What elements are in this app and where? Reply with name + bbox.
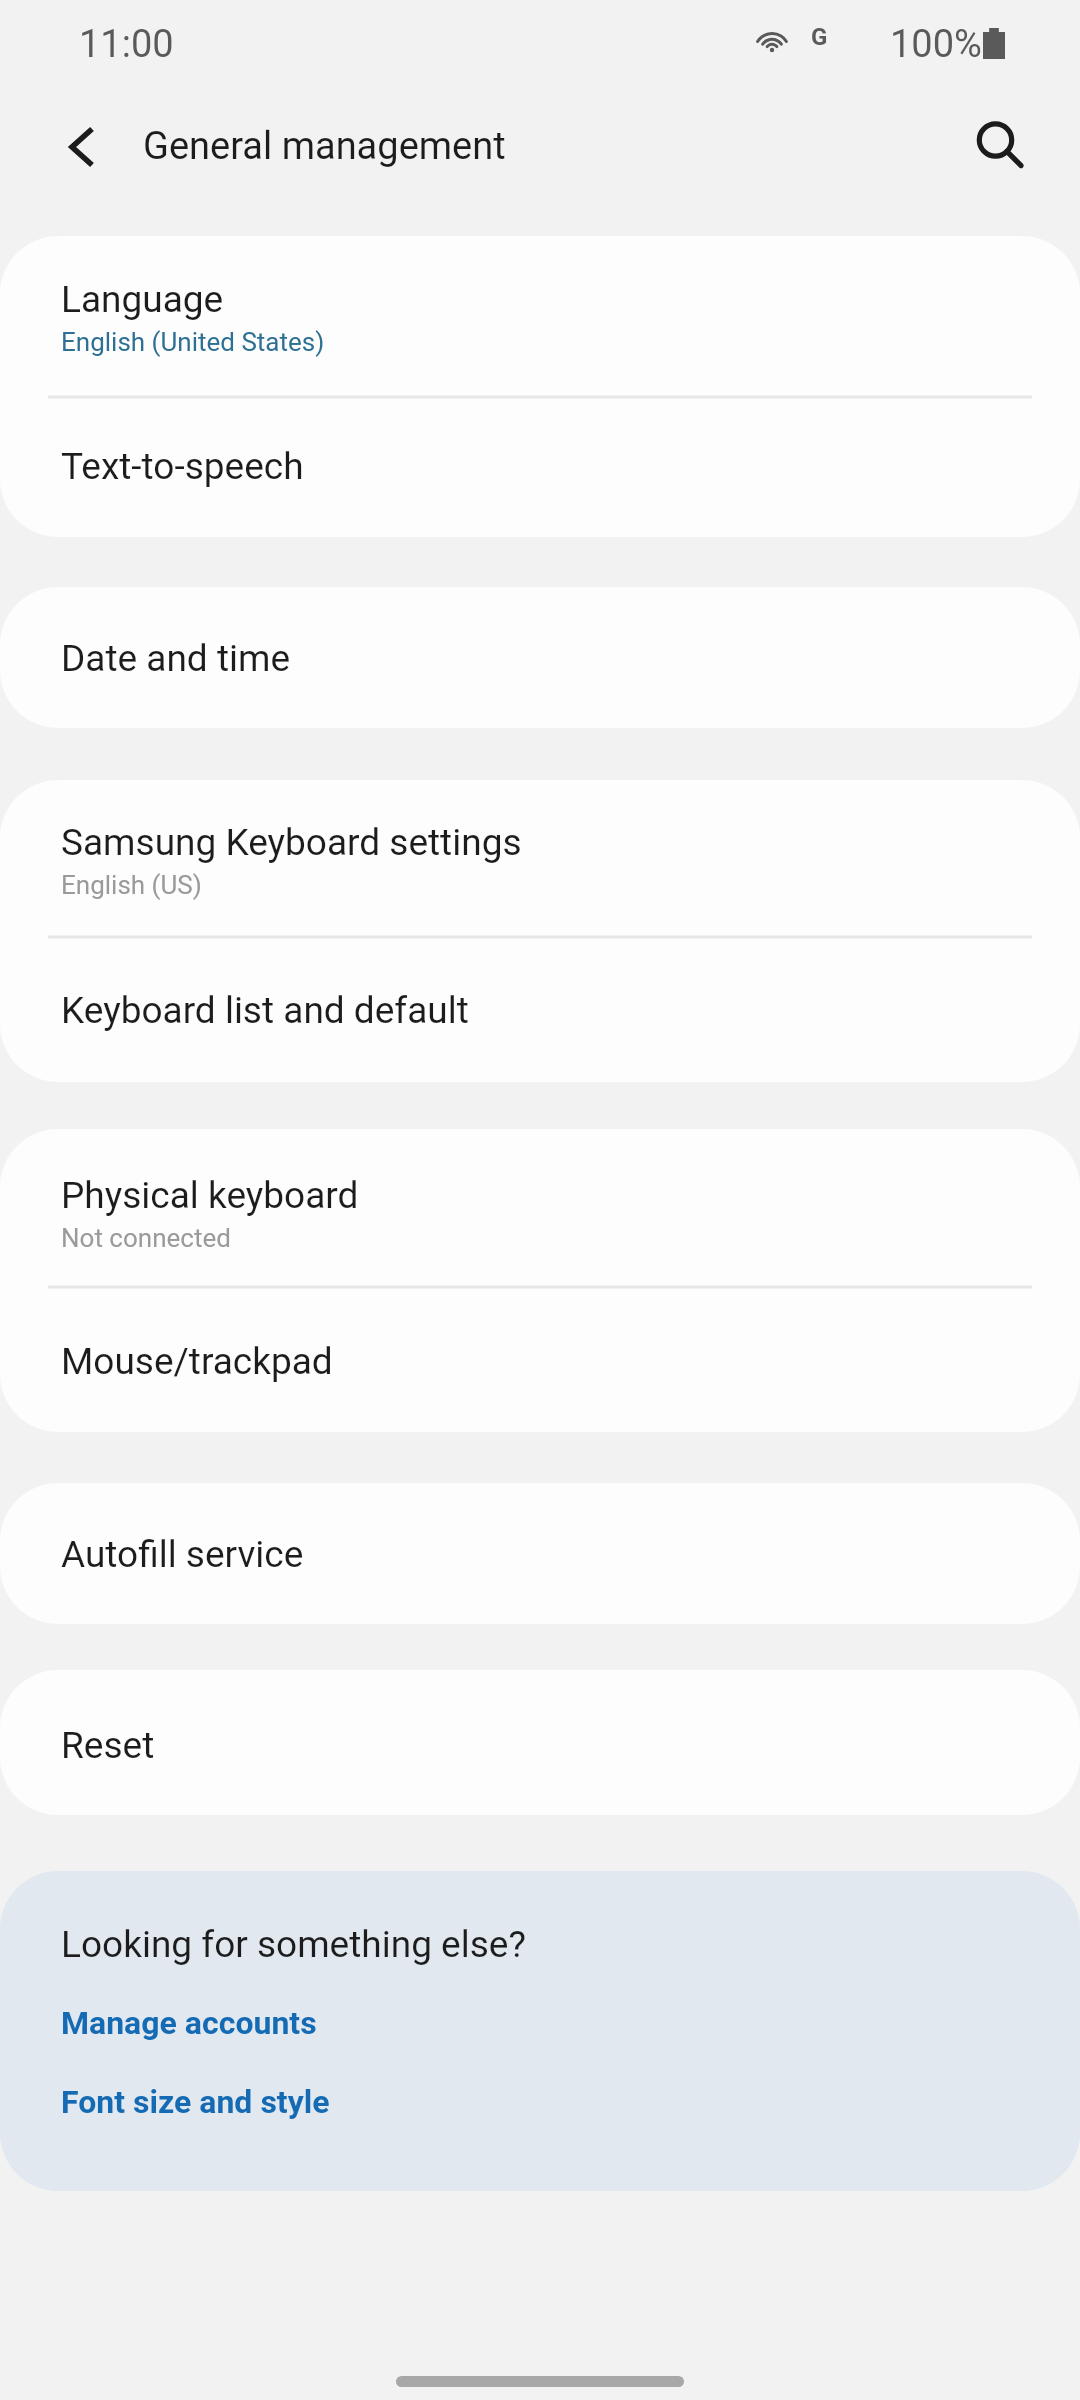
- button[interactable]: Text-to-speech: [0, 398, 1080, 537]
- button[interactable]: Font size and style: [51, 2074, 340, 2130]
- button[interactable]: Samsung Keyboard settings: [0, 780, 1080, 936]
- button[interactable]: Manage accounts: [51, 1995, 327, 2051]
- staticText: Physical keyboard: [61, 1173, 359, 1217]
- staticText: 100%: [890, 22, 982, 67]
- staticText: English (United States): [61, 327, 325, 358]
- staticText: Keyboard list and default: [61, 988, 469, 1032]
- staticText: Reset: [61, 1723, 155, 1767]
- staticText: General management: [143, 124, 506, 169]
- button[interactable]: Autofill service: [0, 1483, 1080, 1624]
- staticText: 11:00: [79, 22, 174, 67]
- button[interactable]: Reset: [0, 1670, 1080, 1815]
- button[interactable]: Physical keyboard: [0, 1129, 1080, 1286]
- button[interactable]: Back: [36, 101, 128, 193]
- staticText: Font size and style: [61, 2083, 330, 2121]
- button[interactable]: Mouse/trackpad: [0, 1288, 1080, 1432]
- staticText: Looking for something else?: [61, 1922, 526, 1966]
- staticText: English (US): [61, 870, 202, 901]
- button[interactable]: Search: [951, 99, 1043, 191]
- staticText: Mouse/trackpad: [61, 1339, 333, 1383]
- staticText: Autofill service: [61, 1532, 304, 1576]
- button[interactable]: Keyboard list and default: [0, 938, 1080, 1082]
- staticText: Not connected: [61, 1223, 231, 1254]
- button[interactable]: Date and time: [0, 587, 1080, 728]
- staticText: Manage accounts: [61, 2004, 317, 2042]
- button[interactable]: Language: [0, 236, 1080, 396]
- staticText: Samsung Keyboard settings: [61, 820, 522, 864]
- staticText: Date and time: [61, 636, 291, 680]
- staticText: Text-to-speech: [61, 444, 304, 488]
- staticText: G: [811, 23, 828, 51]
- staticText: Language: [61, 277, 224, 321]
